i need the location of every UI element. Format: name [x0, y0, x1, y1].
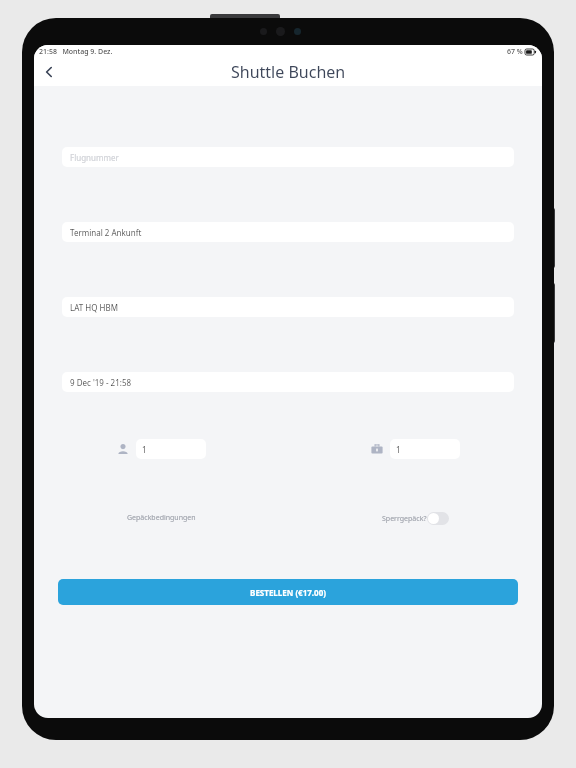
button[interactable]: Sperrgepäck Schalter — [427, 512, 449, 525]
button[interactable]: Terminal 2 Ankunft — [62, 222, 514, 242]
staticText: 9 Dec '19 - 21:58 — [70, 377, 132, 388]
button[interactable]: Zurück — [36, 59, 62, 85]
staticText: 67 % — [507, 47, 523, 57]
staticText: 1 — [142, 444, 147, 455]
staticText: 1 — [396, 444, 401, 455]
staticText: Shuttle Buchen — [231, 61, 346, 83]
staticText: Gepäckbedingungen — [127, 513, 196, 523]
staticText: Flugnummer — [70, 152, 119, 163]
button[interactable]: Gepäck — [370, 439, 460, 459]
button[interactable]: Flugnummer — [62, 147, 514, 167]
staticText: 21:58 Montag 9. Dez. — [39, 47, 113, 57]
button[interactable]: BESTELLEN (€17.00) — [58, 579, 518, 605]
staticText: LAT HQ HBM — [70, 302, 118, 313]
button[interactable]: LAT HQ HBM — [62, 297, 514, 317]
button[interactable]: Sperrgepäck? — [382, 512, 449, 525]
staticText: BESTELLEN (€17.00) — [250, 587, 326, 598]
button[interactable]: Passagiere — [116, 439, 206, 459]
button[interactable]: 9 Dec '19 - 21:58 — [62, 372, 514, 392]
staticText: Terminal 2 Ankunft — [70, 227, 142, 238]
button[interactable]: Gepäckbedingungen — [121, 509, 202, 527]
staticText: Sperrgepäck? — [382, 514, 427, 524]
